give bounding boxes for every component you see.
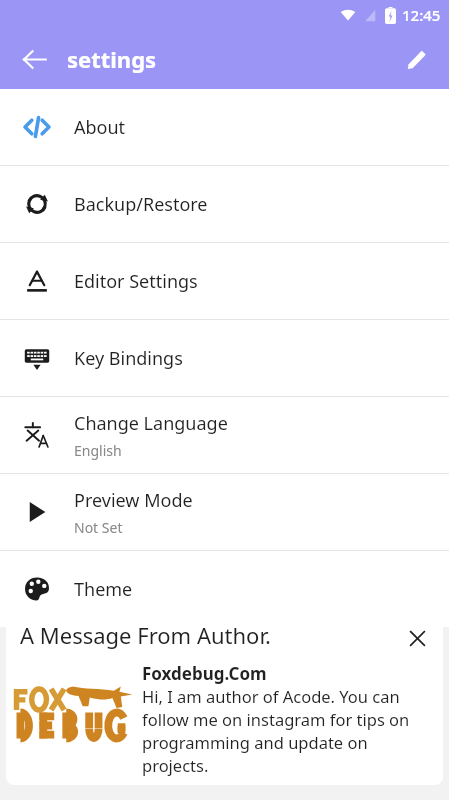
button[interactable]: Backup/Restore — [0, 166, 449, 242]
staticText: Key Bindings — [74, 346, 183, 371]
button[interactable]: Theme — [0, 551, 449, 627]
staticText: Preview Mode — [74, 488, 193, 513]
staticText: Hi, I am author of Acode. You can follow… — [142, 685, 435, 777]
button[interactable]: Close — [399, 620, 435, 656]
staticText: Backup/Restore — [74, 192, 208, 217]
button[interactable]: Editor Settings — [0, 243, 449, 319]
button[interactable]: Back — [10, 35, 58, 83]
button[interactable]: Preview Mode — [0, 474, 449, 550]
staticText: Theme — [74, 577, 133, 602]
button[interactable]: A Message From Author. — [6, 612, 443, 785]
staticText: settings — [67, 44, 157, 74]
staticText: About — [74, 115, 126, 140]
staticText: Change Language — [74, 411, 228, 436]
staticText: Editor Settings — [74, 269, 198, 294]
staticText: 12:45 — [402, 5, 441, 25]
staticText: English — [74, 441, 122, 460]
staticText: A Message From Author. — [20, 620, 271, 650]
button[interactable]: Change Language — [0, 397, 449, 473]
staticText: Foxdebug.Com — [142, 662, 267, 685]
button[interactable]: Edit — [393, 35, 441, 83]
button[interactable]: About — [0, 89, 449, 165]
staticText: Not Set — [74, 518, 123, 537]
button[interactable]: Key Bindings — [0, 320, 449, 396]
